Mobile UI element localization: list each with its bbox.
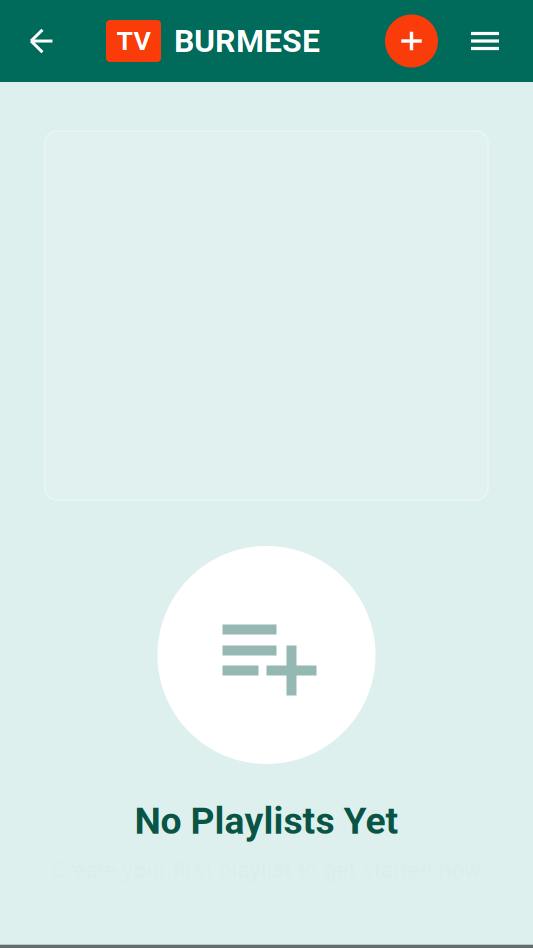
button[interactable]: Menu — [463, 19, 507, 63]
button[interactable]: Back — [18, 17, 65, 64]
staticText: No Playlists Yet — [134, 799, 398, 843]
button[interactable]: Add — [385, 14, 438, 67]
button[interactable]: TV — [106, 20, 320, 62]
staticText: BURMESE — [174, 22, 320, 60]
staticText: TV — [116, 25, 150, 57]
